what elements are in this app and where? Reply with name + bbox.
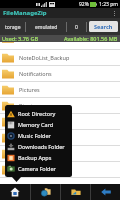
button[interactable]: Downloads Folder bbox=[5, 141, 72, 152]
staticText: 92% bbox=[79, 1, 89, 8]
button[interactable]: 0 bbox=[67, 21, 86, 33]
button[interactable]: Music bbox=[0, 130, 120, 145]
staticText: Ringtones bbox=[19, 102, 46, 109]
staticText: Memory Card bbox=[18, 121, 54, 128]
staticText: Music bbox=[19, 134, 35, 141]
button[interactable]: Notifications bbox=[0, 66, 120, 81]
button[interactable]: Root Directory bbox=[5, 108, 72, 119]
staticText: Camera Folder bbox=[18, 165, 56, 172]
button[interactable]: Ringtones bbox=[0, 98, 120, 113]
button[interactable]: Movies bbox=[0, 114, 120, 129]
button[interactable]: Send bbox=[61, 184, 90, 200]
button[interactable]: Podcasts bbox=[0, 146, 120, 161]
button[interactable]: Home bbox=[0, 184, 30, 200]
staticText: torage bbox=[5, 24, 21, 31]
staticText: emulated bbox=[35, 24, 58, 31]
staticText: Downloads Folder bbox=[18, 143, 65, 150]
button[interactable]: Music Folder bbox=[5, 130, 72, 141]
staticText: Alarms bbox=[19, 166, 38, 173]
staticText: Pictures bbox=[19, 86, 40, 93]
button[interactable]: Alarms bbox=[0, 162, 120, 177]
staticText: Podcasts bbox=[19, 150, 43, 157]
staticText: Notifications bbox=[19, 70, 52, 77]
button[interactable]: Search bbox=[89, 21, 118, 32]
staticText: 0 bbox=[75, 24, 78, 31]
staticText: Backup Apps bbox=[18, 154, 52, 161]
button[interactable]: Backup Apps bbox=[5, 152, 72, 163]
button[interactable]: Camera Folder bbox=[5, 163, 72, 174]
button[interactable]: NoteDoList_Backup bbox=[0, 50, 120, 65]
button[interactable]: emulated bbox=[26, 21, 66, 33]
button[interactable]: torage bbox=[0, 21, 25, 33]
staticText: Used: 3.76 GB bbox=[2, 35, 38, 42]
button[interactable]: Back bbox=[91, 184, 120, 200]
staticText: Movies bbox=[19, 118, 38, 125]
staticText: Root Directory bbox=[18, 110, 56, 117]
button[interactable]: More options bbox=[114, 11, 115, 16]
button[interactable]: Pictures bbox=[0, 82, 120, 97]
staticText: 1:23 pm bbox=[99, 1, 118, 8]
staticText: Search bbox=[94, 23, 113, 30]
button[interactable]: Download bbox=[0, 42, 120, 49]
staticText: Music Folder bbox=[18, 132, 51, 139]
staticText: NoteDoList_Backup bbox=[19, 54, 70, 61]
button[interactable]: Memory Card bbox=[5, 119, 72, 130]
staticText: FileManageZip bbox=[3, 9, 47, 17]
staticText: Available: 801.56 MB bbox=[64, 35, 118, 42]
button[interactable]: Computer bbox=[31, 184, 60, 200]
